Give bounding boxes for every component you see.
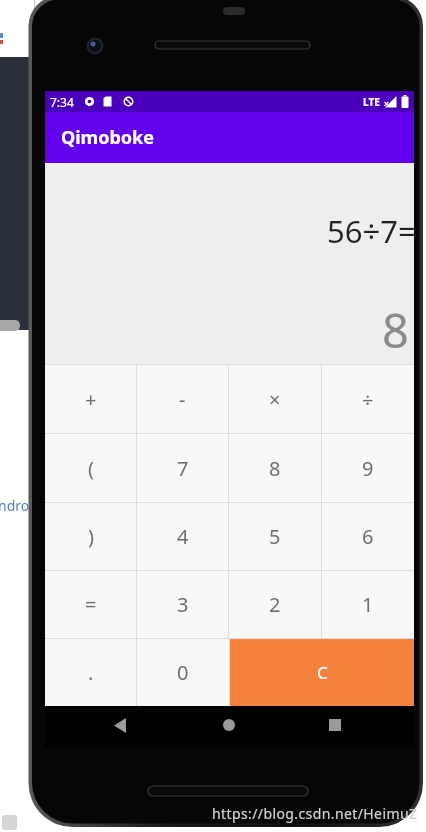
button[interactable]: ÷ bbox=[322, 365, 414, 433]
button[interactable] bbox=[223, 719, 235, 731]
staticText: LTE bbox=[363, 95, 380, 109]
staticText: 56÷7= bbox=[327, 210, 416, 252]
button[interactable]: 4 bbox=[137, 503, 228, 570]
staticText: . bbox=[88, 659, 94, 686]
button[interactable] bbox=[114, 718, 127, 733]
button[interactable]: ) bbox=[45, 503, 136, 570]
button[interactable]: 5 bbox=[229, 503, 321, 570]
staticText: 1 bbox=[362, 591, 374, 618]
button[interactable]: = bbox=[45, 571, 136, 638]
button[interactable]: 8 bbox=[229, 434, 321, 502]
staticText: - bbox=[179, 386, 186, 413]
button[interactable]: 3 bbox=[137, 571, 228, 638]
staticText: 4 bbox=[177, 523, 189, 550]
staticText: ) bbox=[88, 523, 94, 550]
button[interactable]: 2 bbox=[229, 571, 321, 638]
button[interactable]: 0 bbox=[137, 639, 229, 706]
button[interactable]: 6 bbox=[322, 503, 414, 570]
staticText: 3 bbox=[177, 591, 189, 618]
staticText: = bbox=[85, 591, 97, 618]
staticText: Qimoboke bbox=[61, 125, 154, 150]
staticText: ÷ bbox=[362, 386, 374, 413]
staticText: 7 bbox=[177, 455, 189, 482]
staticText: 8 bbox=[382, 298, 409, 362]
button[interactable]: 7 bbox=[137, 434, 228, 502]
staticText: + bbox=[85, 386, 97, 413]
button[interactable]: 1 bbox=[322, 571, 414, 638]
button[interactable]: C bbox=[230, 639, 414, 706]
staticText: ( bbox=[88, 455, 94, 482]
button[interactable]: 9 bbox=[322, 434, 414, 502]
staticText: 9 bbox=[362, 455, 374, 482]
staticText: 5 bbox=[269, 523, 281, 550]
staticText: × bbox=[269, 386, 281, 413]
button[interactable]: ( bbox=[45, 434, 136, 502]
button[interactable]: - bbox=[137, 365, 228, 433]
staticText: 0 bbox=[177, 659, 189, 686]
staticText: C bbox=[317, 661, 328, 684]
staticText: https://blog.csdn.net/HeimuZ bbox=[212, 804, 418, 823]
button[interactable]: + bbox=[45, 365, 136, 433]
staticText: 8 bbox=[269, 455, 281, 482]
button[interactable]: . bbox=[45, 639, 136, 706]
button[interactable]: × bbox=[229, 365, 321, 433]
staticText: ndro bbox=[0, 496, 30, 515]
staticText: 2 bbox=[269, 591, 281, 618]
staticText: 6 bbox=[362, 523, 374, 550]
staticText: 7:34 bbox=[50, 94, 74, 110]
